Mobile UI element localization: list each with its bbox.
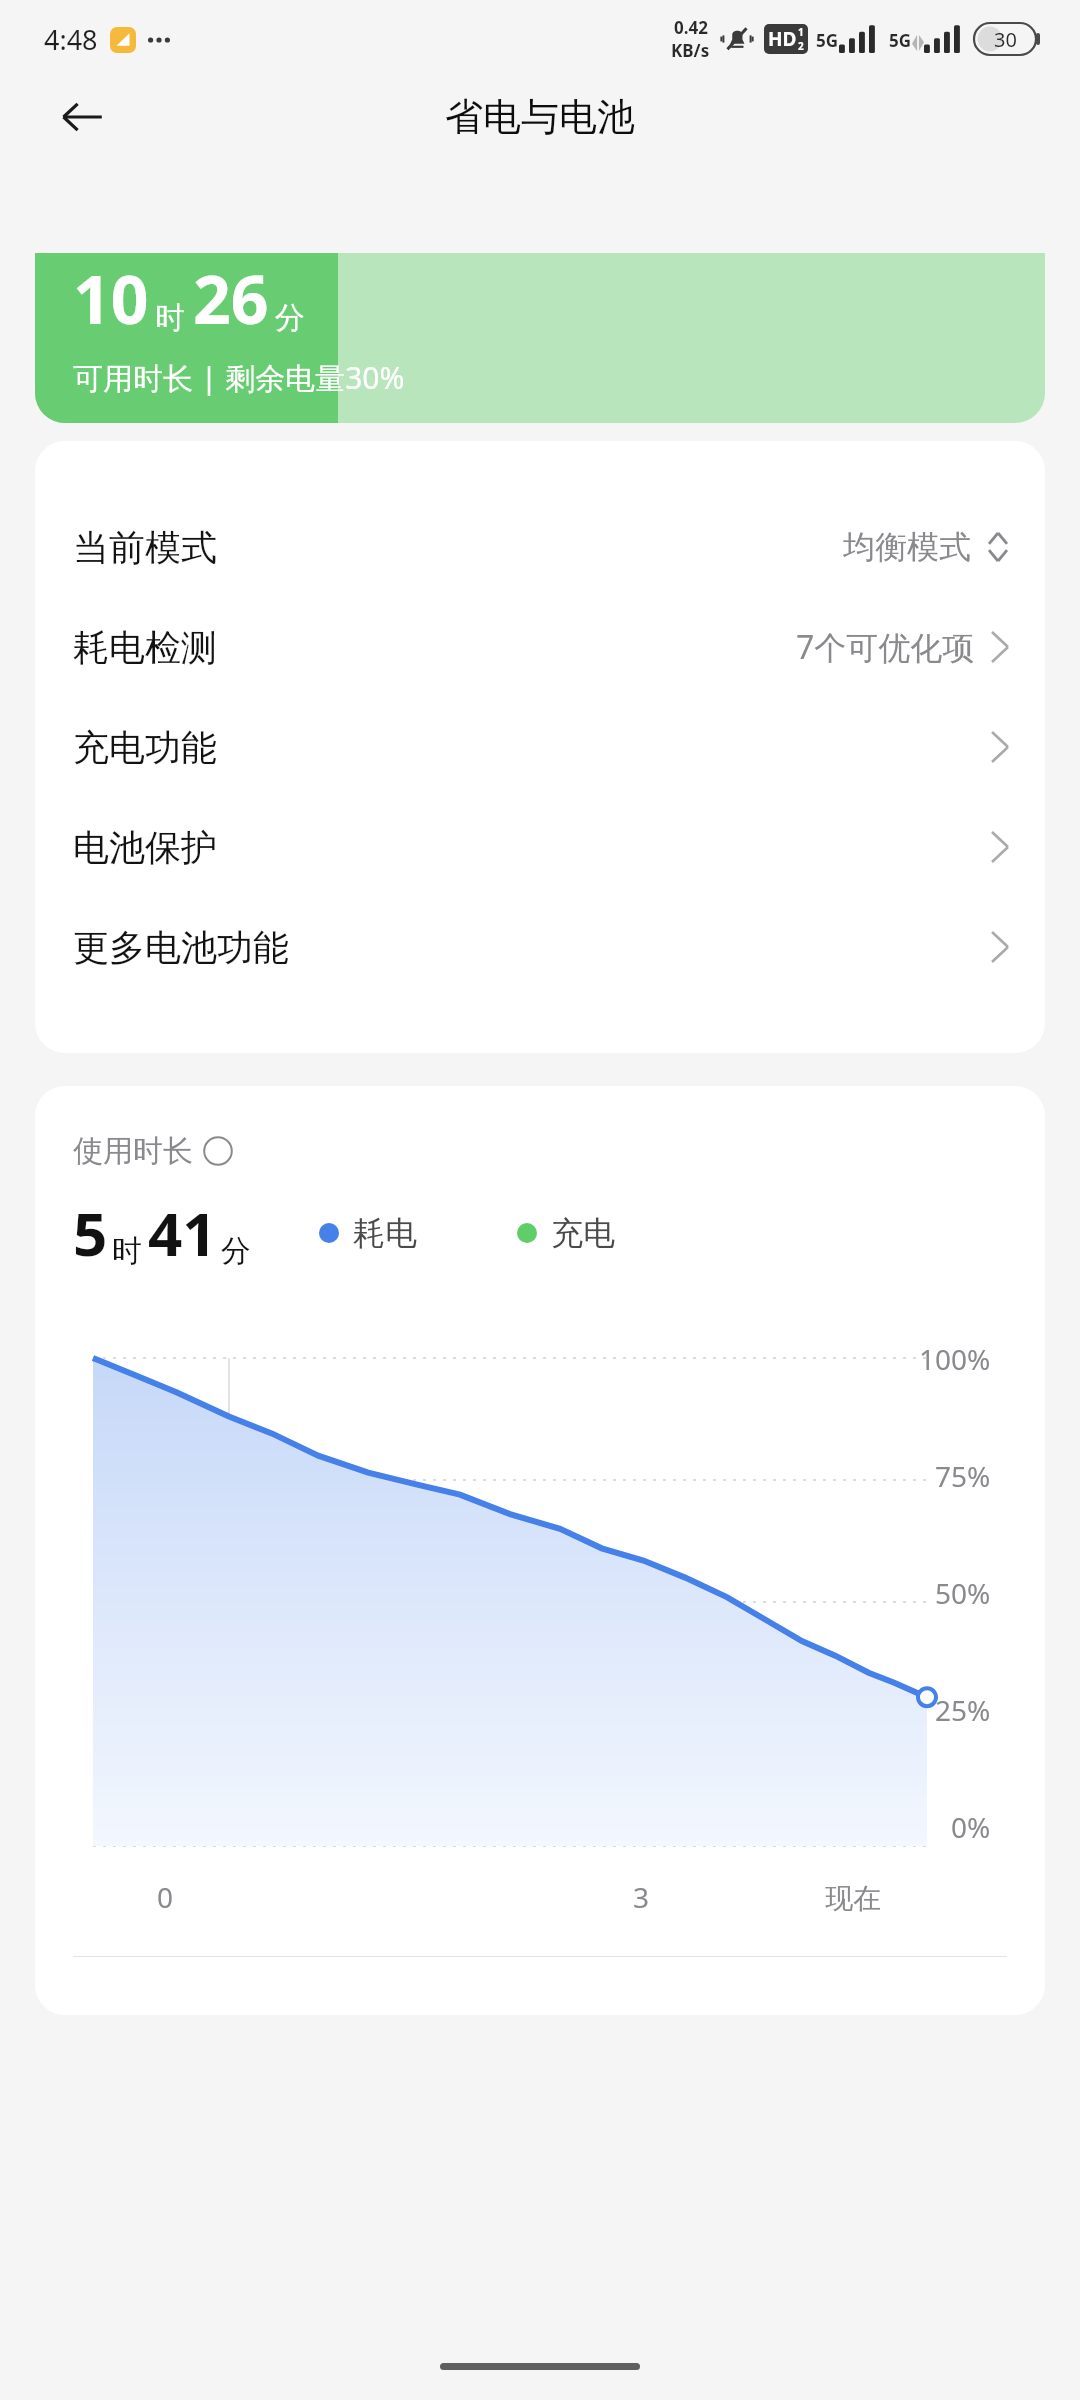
staticText: 0	[157, 1878, 174, 1916]
staticText: 时	[112, 1232, 142, 1270]
staticText: 当前模式	[73, 525, 217, 570]
staticText: 100%	[919, 1340, 991, 1378]
button[interactable]: 使用时长	[73, 1132, 233, 1170]
staticText: 现在	[825, 1881, 881, 1916]
button[interactable]: Back	[50, 85, 114, 149]
staticText: 充电	[551, 1213, 615, 1253]
staticText: 41	[148, 1192, 217, 1274]
staticText: 使用时长	[73, 1132, 193, 1170]
staticText: 省电与电池	[445, 93, 635, 141]
staticText: 75%	[935, 1457, 991, 1495]
staticText: 充电功能	[73, 725, 217, 770]
staticText: 3	[633, 1878, 650, 1916]
staticText: 26	[193, 253, 269, 343]
staticText: 10	[73, 253, 149, 343]
staticText: 5	[73, 1192, 108, 1274]
staticText: 耗电	[353, 1213, 417, 1253]
staticText: 7个可优化项	[796, 625, 975, 669]
staticText: HD	[768, 26, 797, 52]
button[interactable]: 电池保护	[35, 797, 1045, 897]
button[interactable]: 充电功能	[35, 697, 1045, 797]
staticText: 分	[221, 1232, 251, 1270]
staticText: 电池保护	[73, 825, 217, 870]
button[interactable]: 10	[35, 253, 1045, 423]
staticText: 分	[275, 299, 305, 337]
staticText: 时	[155, 299, 185, 337]
other: Help	[203, 1136, 233, 1166]
button[interactable]: 更多电池功能	[35, 897, 1045, 997]
staticText: 50%	[935, 1574, 991, 1612]
staticText: 4:48	[44, 21, 98, 58]
staticText: KB/s	[671, 39, 710, 62]
staticText: 更多电池功能	[73, 925, 289, 970]
staticText: 均衡模式	[843, 527, 971, 567]
staticText: 5G	[889, 29, 912, 52]
staticText: 耗电检测	[73, 625, 217, 670]
staticText: 可用时长 | 剩余电量30%	[73, 357, 405, 398]
button[interactable]: 当前模式	[35, 497, 1045, 597]
staticText: 0.42	[674, 16, 708, 39]
staticText: 5G	[816, 29, 839, 52]
staticText: 25%	[935, 1691, 991, 1729]
button[interactable]: 耗电检测	[35, 597, 1045, 697]
staticText: 30	[994, 26, 1017, 53]
staticText: 0%	[951, 1808, 991, 1846]
staticText: 2	[798, 39, 804, 53]
staticText: 1	[798, 25, 804, 39]
